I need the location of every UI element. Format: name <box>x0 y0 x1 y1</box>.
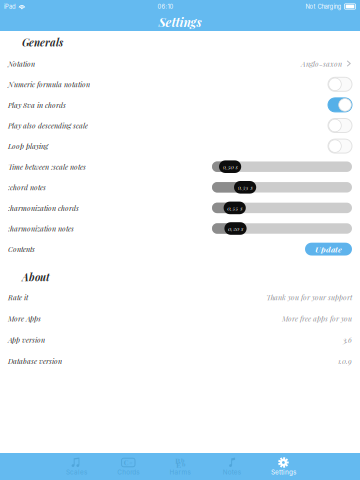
button[interactable]: Play 8va in chords <box>0 95 360 115</box>
button[interactable]: Numeric formula notation <box>0 74 360 95</box>
staticText: Chords <box>117 468 139 476</box>
staticText: :harmonization chords <box>8 203 79 213</box>
staticText: Settings <box>158 14 201 30</box>
staticText: b <box>181 456 184 464</box>
staticText: Numeric formula notation <box>8 79 90 89</box>
staticText: b <box>182 460 185 468</box>
staticText: 1.0.9 <box>338 356 352 366</box>
button[interactable]: Scales <box>51 453 102 480</box>
staticText: More free apps for you <box>282 314 352 323</box>
staticText: 06:10 <box>157 3 173 10</box>
staticText: Play also descending scale <box>8 121 88 130</box>
button[interactable]: Notation <box>0 53 360 74</box>
staticText: Generals <box>22 35 63 49</box>
button[interactable]: Update <box>305 243 352 255</box>
button[interactable]: Settings <box>258 453 309 480</box>
staticText: C# <box>124 458 133 467</box>
staticText: Thank you for your support <box>266 292 352 302</box>
button[interactable]: Rate it <box>0 287 360 308</box>
staticText: Contents <box>8 244 35 254</box>
staticText: Notes <box>223 468 241 476</box>
staticText: 0,30 s <box>223 163 238 171</box>
staticText: 0,55 s <box>227 204 242 212</box>
staticText: 0,35 s <box>238 183 253 191</box>
button[interactable]: Loop playing <box>0 136 360 156</box>
staticText: Harms <box>169 468 190 476</box>
button[interactable]: App version <box>0 329 360 350</box>
button[interactable]: C# <box>102 453 154 480</box>
staticText: Time between :scale notes <box>8 162 86 171</box>
staticText: :harmonization notes <box>8 224 74 233</box>
staticText: Notation <box>8 59 35 68</box>
staticText: More Apps <box>8 314 41 323</box>
staticText: Settings <box>271 468 296 476</box>
staticText: :chord notes <box>8 182 46 192</box>
staticText: Play 8va in chords <box>8 100 66 110</box>
staticText: Scales <box>66 468 87 476</box>
staticText: Rate it <box>8 292 28 302</box>
staticText: 0,20 s <box>228 224 243 233</box>
button[interactable]: Play also descending scale <box>0 115 360 136</box>
button[interactable]: More Apps <box>0 308 360 329</box>
staticText: B <box>175 455 180 466</box>
staticText: Loop playing <box>8 141 48 151</box>
staticText: iPad <box>4 3 16 10</box>
staticText: About <box>22 270 50 284</box>
button[interactable]: B <box>154 453 206 480</box>
staticText: Update <box>315 244 342 254</box>
staticText: Not Charging <box>305 3 341 10</box>
staticText: Anglo-saxon <box>301 59 342 68</box>
staticText: 3.6 <box>343 335 352 344</box>
staticText: App version <box>8 335 45 344</box>
staticText: E <box>176 459 181 470</box>
button[interactable]: Notes <box>206 453 258 480</box>
staticText: Database version <box>8 356 62 366</box>
button[interactable]: Database version <box>0 350 360 371</box>
